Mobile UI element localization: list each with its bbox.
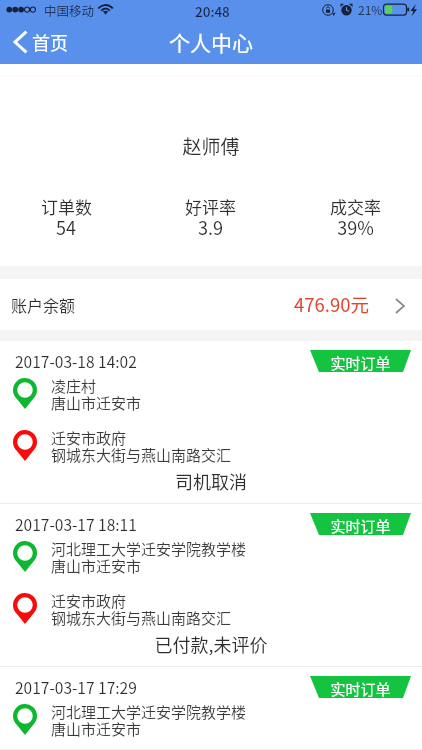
staticText: 迁安市政府 bbox=[51, 590, 127, 612]
staticText: 476.90元 bbox=[294, 291, 369, 318]
other: 实时订单 bbox=[310, 513, 411, 535]
staticText: 凌庄村 bbox=[51, 375, 97, 397]
staticText: 成交率 bbox=[330, 194, 381, 219]
staticText: 司机取消 bbox=[0, 468, 422, 494]
staticText: 河北理工大学迁安学院教学楼 bbox=[51, 701, 247, 723]
staticText: 2017-03-17 18:11 bbox=[15, 513, 137, 535]
staticText: 实时订单 bbox=[310, 352, 411, 374]
other: 查看账户余额 bbox=[395, 298, 405, 314]
staticText: 好评率 bbox=[185, 194, 236, 219]
staticText: 迁安市政府 bbox=[51, 427, 127, 449]
staticText: 账户余额 bbox=[11, 293, 76, 316]
staticText: 2017-03-17 17:29 bbox=[15, 676, 137, 698]
staticText: 订单数 bbox=[41, 194, 92, 219]
other: 实时订单 bbox=[310, 350, 411, 372]
staticText: 实时订单 bbox=[310, 515, 411, 537]
button[interactable]: 账户余额 bbox=[0, 279, 422, 330]
staticText: 钢城东大街与燕山南路交汇 bbox=[51, 607, 232, 629]
button[interactable]: 2017-03-18 14:02 bbox=[0, 341, 422, 504]
other: 实时订单 bbox=[310, 676, 411, 698]
staticText: 中国移动 bbox=[44, 1, 95, 19]
staticText: 21% bbox=[358, 1, 383, 18]
staticText: 已付款,未评价 bbox=[0, 631, 422, 657]
staticText: 3.9 bbox=[198, 214, 223, 240]
staticText: 实时订单 bbox=[310, 678, 411, 700]
staticText: 赵师傅 bbox=[0, 132, 422, 160]
button[interactable]: 2017-03-17 17:29 bbox=[0, 667, 422, 750]
staticText: 唐山市迁安市 bbox=[51, 392, 142, 414]
staticText: 个人中心 bbox=[169, 27, 253, 57]
staticText: 54 bbox=[56, 214, 76, 240]
staticText: 39% bbox=[337, 214, 374, 240]
staticText: 2017-03-18 14:02 bbox=[15, 350, 137, 372]
other: 返回 bbox=[13, 30, 28, 54]
staticText: 河北理工大学迁安学院教学楼 bbox=[51, 538, 247, 560]
button[interactable]: 返回 bbox=[0, 23, 78, 61]
staticText: 唐山市迁安市 bbox=[51, 555, 142, 577]
button[interactable]: 2017-03-17 18:11 bbox=[0, 504, 422, 667]
staticText: 唐山市迁安市 bbox=[51, 718, 142, 740]
staticText: 钢城东大街与燕山南路交汇 bbox=[51, 444, 232, 466]
staticText: 20:48 bbox=[195, 1, 230, 21]
staticText: 首页 bbox=[32, 29, 68, 55]
